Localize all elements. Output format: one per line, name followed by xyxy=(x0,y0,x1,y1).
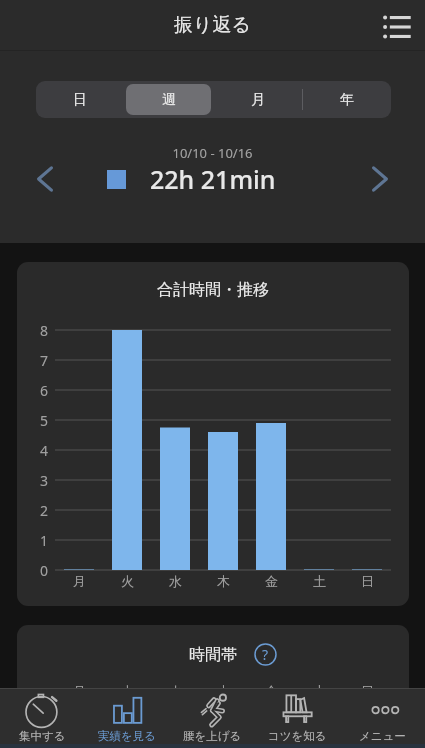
staticText: 月 xyxy=(73,573,86,589)
staticText: 金 xyxy=(265,683,278,699)
staticText: 日 xyxy=(361,683,374,699)
staticText: メニュー xyxy=(359,729,406,743)
staticText: 月 xyxy=(251,91,265,109)
staticText: コツを知る xyxy=(268,729,327,743)
staticText: 22h 21min xyxy=(150,162,276,196)
staticText: 腰を上げる xyxy=(183,729,242,743)
staticText: 5 xyxy=(17,411,48,430)
staticText: 週 xyxy=(162,91,176,109)
staticText: 時間帯 xyxy=(189,645,237,665)
button[interactable]: 日 xyxy=(38,84,122,115)
staticText: 火 xyxy=(121,683,134,699)
staticText: 年 xyxy=(340,91,354,109)
staticText: 月 xyxy=(73,683,86,699)
button[interactable]: Next period xyxy=(356,156,404,202)
button[interactable]: コツを知る xyxy=(255,689,340,744)
button[interactable]: Help xyxy=(254,643,277,666)
staticText: 2 xyxy=(17,501,48,520)
button[interactable]: 集中する xyxy=(0,689,85,744)
button[interactable]: 実績を見る xyxy=(85,689,170,744)
staticText: ? xyxy=(262,645,269,664)
staticText: 日 xyxy=(73,91,87,109)
staticText: 振り返る xyxy=(174,13,251,37)
staticText: 4 xyxy=(17,441,48,460)
staticText: 合計時間・推移 xyxy=(157,280,269,300)
staticText: 木 xyxy=(217,573,230,589)
button[interactable]: 腰を上げる xyxy=(170,689,255,744)
staticText: 土 xyxy=(313,683,326,699)
button[interactable]: メニュー xyxy=(340,689,425,744)
staticText: 木 xyxy=(217,683,230,699)
button[interactable]: 月 xyxy=(215,84,300,115)
staticText: 7 xyxy=(17,351,48,370)
button[interactable]: Previous period xyxy=(21,156,69,202)
staticText: 3 xyxy=(17,471,48,490)
staticText: 水 xyxy=(169,573,182,589)
staticText: 10/10 - 10/16 xyxy=(0,144,425,162)
staticText: 8 xyxy=(17,321,48,340)
button[interactable]: 年 xyxy=(304,84,389,115)
button[interactable]: 週 xyxy=(126,84,211,115)
staticText: 実績を見る xyxy=(98,729,157,743)
staticText: 1 xyxy=(17,531,48,550)
staticText: 金 xyxy=(265,573,278,589)
staticText: 土 xyxy=(313,573,326,589)
staticText: 0 xyxy=(17,561,48,580)
button[interactable]: List view xyxy=(373,1,421,49)
staticText: 日 xyxy=(361,573,374,589)
staticText: 集中する xyxy=(19,729,66,743)
staticText: 水 xyxy=(169,683,182,699)
staticText: 6 xyxy=(17,381,48,400)
staticText: 火 xyxy=(121,573,134,589)
